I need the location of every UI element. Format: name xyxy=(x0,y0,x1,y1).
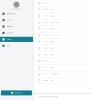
staticText: 4821 xyxy=(44,2,48,4)
button[interactable]: 4816 xyxy=(34,32,91,39)
staticText: 4814 xyxy=(44,47,48,49)
button[interactable]: Migrate API xyxy=(0,90,33,100)
staticText: Dec 30 xyxy=(51,28,56,30)
button[interactable]: 4813 xyxy=(34,52,91,58)
staticText: Sep 11 xyxy=(51,67,56,68)
staticText: 4819 xyxy=(44,15,48,17)
staticText: 4815 xyxy=(44,41,48,43)
staticText: 4810 xyxy=(44,73,48,75)
staticText: Aug 29 14:40 xyxy=(51,60,60,62)
staticText: Jul 14 xyxy=(51,79,54,81)
staticText: 4812 xyxy=(44,60,48,62)
button[interactable]: 4810 xyxy=(34,71,91,77)
button[interactable]: 4817 xyxy=(34,26,91,32)
staticText: Migrate API xyxy=(15,92,22,94)
staticText: 4811 xyxy=(44,67,48,68)
button[interactable]: 4811 xyxy=(34,64,91,71)
staticText: Jan 02 xyxy=(51,41,55,43)
staticText: 4813 xyxy=(44,54,48,55)
staticText: 4816 xyxy=(44,34,48,36)
button[interactable]: 4809 xyxy=(34,77,91,84)
button[interactable]: Tags xyxy=(0,43,33,50)
staticText: 4817 xyxy=(44,28,48,30)
staticText: BRANDNAME xyxy=(12,8,21,10)
button[interactable]: 4819 xyxy=(34,13,91,19)
button[interactable]: 4815 xyxy=(34,39,91,45)
staticText: Oct 23 08:05 xyxy=(51,73,59,75)
button[interactable]: Who's On xyxy=(0,30,33,37)
staticText: 4820 xyxy=(44,9,48,10)
button[interactable]: 4818 xyxy=(34,19,91,26)
staticText: Jan 12 xyxy=(51,2,55,4)
button[interactable]: 4821 xyxy=(34,0,91,6)
staticText: Jun 05 xyxy=(51,54,55,55)
staticText: Dashboard xyxy=(7,13,16,15)
staticText: Visitors xyxy=(7,38,12,40)
staticText: Feb 22 10:04 xyxy=(51,21,60,23)
button[interactable]: Users xyxy=(0,18,33,24)
button[interactable]: Dashboard xyxy=(0,11,33,18)
button[interactable]: Webinars xyxy=(0,24,33,30)
staticText: Showing 1 to 500 of 500 entries xyxy=(38,96,58,98)
staticText: Users xyxy=(7,19,12,21)
staticText: Who's On xyxy=(7,32,13,34)
staticText: Apr 17 xyxy=(51,47,56,49)
staticText: Jan 12 xyxy=(51,9,55,10)
button[interactable]: 4814 xyxy=(34,45,91,52)
button[interactable]: 4820 xyxy=(34,6,91,13)
staticText: 4809 xyxy=(44,79,48,81)
staticText: Mar 04 xyxy=(51,15,56,17)
staticText: Webinars xyxy=(7,26,14,27)
staticText: Tags xyxy=(7,45,11,47)
staticText: Nov 18 09:12 xyxy=(51,34,60,36)
button[interactable]: 4812 xyxy=(34,58,91,65)
button[interactable]: Visitors xyxy=(0,37,33,43)
staticText: 4818 xyxy=(44,21,48,23)
